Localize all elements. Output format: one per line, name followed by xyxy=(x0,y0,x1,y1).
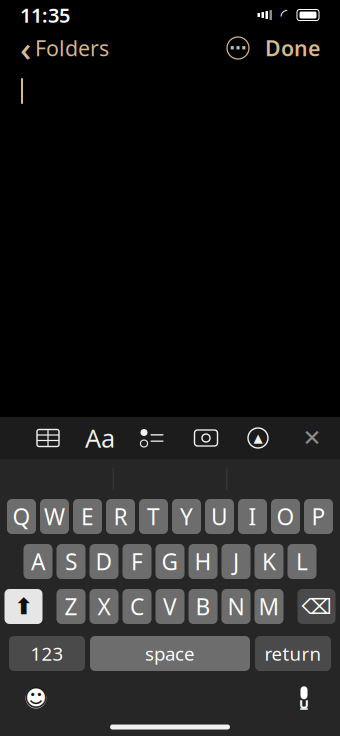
button[interactable]: H xyxy=(188,544,217,579)
staticText: ⋯ xyxy=(229,38,246,58)
staticText: Folders xyxy=(35,34,109,62)
staticText: N xyxy=(227,591,244,621)
staticText: Done xyxy=(265,34,320,62)
button[interactable]: Q xyxy=(7,499,36,534)
staticText: ◜ xyxy=(280,5,287,25)
staticText: W xyxy=(44,501,65,531)
staticText: ⌫ xyxy=(301,594,331,619)
staticText: space xyxy=(145,641,195,666)
button[interactable]: Markup xyxy=(236,417,280,459)
staticText: ✕ xyxy=(302,425,321,451)
staticText: ∪ xyxy=(298,695,310,712)
button[interactable]: Done xyxy=(255,28,330,68)
button[interactable]: Format xyxy=(78,417,122,459)
button[interactable]: R xyxy=(106,499,135,534)
staticText: P xyxy=(311,501,325,531)
button[interactable]: K xyxy=(254,544,283,579)
staticText: M xyxy=(258,591,279,621)
button[interactable]: O xyxy=(271,499,300,534)
button[interactable]: F xyxy=(122,544,151,579)
staticText: D xyxy=(95,546,112,576)
staticText: I xyxy=(248,501,256,531)
button[interactable]: Emoji xyxy=(14,678,58,718)
button[interactable]: P xyxy=(304,499,333,534)
staticText: G xyxy=(161,546,178,576)
staticText: L xyxy=(296,546,308,576)
staticText: Z xyxy=(64,591,77,621)
staticText: U xyxy=(211,501,228,531)
staticText: F xyxy=(131,546,143,576)
button[interactable]: Checklist xyxy=(130,417,174,459)
button[interactable]: G xyxy=(155,544,184,579)
staticText: R xyxy=(113,501,127,531)
button[interactable]: Y xyxy=(172,499,201,534)
staticText: return xyxy=(264,641,321,666)
button[interactable]: T xyxy=(139,499,168,534)
staticText: X xyxy=(97,591,110,621)
button[interactable]: A xyxy=(23,544,52,579)
staticText: K xyxy=(262,546,276,576)
staticText: ☺ xyxy=(23,684,48,712)
staticText: V xyxy=(163,591,177,621)
staticText: ⬆ xyxy=(14,594,33,619)
staticText: H xyxy=(194,546,211,576)
staticText: S xyxy=(65,546,77,576)
staticText: B xyxy=(195,591,210,621)
button[interactable]: D xyxy=(89,544,118,579)
button[interactable]: Table xyxy=(26,417,70,459)
button[interactable]: X xyxy=(89,589,118,624)
button[interactable]: I xyxy=(238,499,267,534)
staticText: ▲ xyxy=(253,431,262,445)
button[interactable]: J xyxy=(221,544,250,579)
staticText: 123 xyxy=(30,641,63,666)
button[interactable]: return xyxy=(255,636,331,671)
staticText: J xyxy=(233,546,239,576)
button[interactable]: ‹ xyxy=(10,19,119,77)
button[interactable]: B xyxy=(188,589,217,624)
button[interactable]: U xyxy=(205,499,234,534)
staticText: O xyxy=(276,501,294,531)
button[interactable]: C xyxy=(122,589,151,624)
staticText: A xyxy=(31,546,45,576)
button[interactable]: Camera xyxy=(184,417,228,459)
button[interactable]: Z xyxy=(56,589,85,624)
button[interactable]: More xyxy=(221,31,255,65)
button[interactable]: M xyxy=(254,589,283,624)
button[interactable]: W xyxy=(40,499,69,534)
button[interactable]: S xyxy=(56,544,85,579)
button[interactable]: Shift xyxy=(4,589,42,624)
button[interactable]: 123 xyxy=(9,636,85,671)
staticText: ‹ xyxy=(20,25,31,71)
staticText: 11:35 xyxy=(20,2,70,28)
button[interactable]: V xyxy=(155,589,184,624)
button[interactable]: N xyxy=(221,589,250,624)
button[interactable]: E xyxy=(73,499,102,534)
staticText: Y xyxy=(180,501,193,531)
button[interactable]: Close xyxy=(292,417,332,459)
button[interactable]: Dictate xyxy=(282,678,326,718)
staticText: E xyxy=(81,501,94,531)
button[interactable]: Delete xyxy=(297,589,335,624)
button[interactable]: L xyxy=(287,544,316,579)
staticText: Q xyxy=(12,501,30,531)
button[interactable]: space xyxy=(90,636,250,671)
staticText: C xyxy=(130,591,144,621)
staticText: T xyxy=(147,501,160,531)
staticText: Aa xyxy=(85,421,115,455)
